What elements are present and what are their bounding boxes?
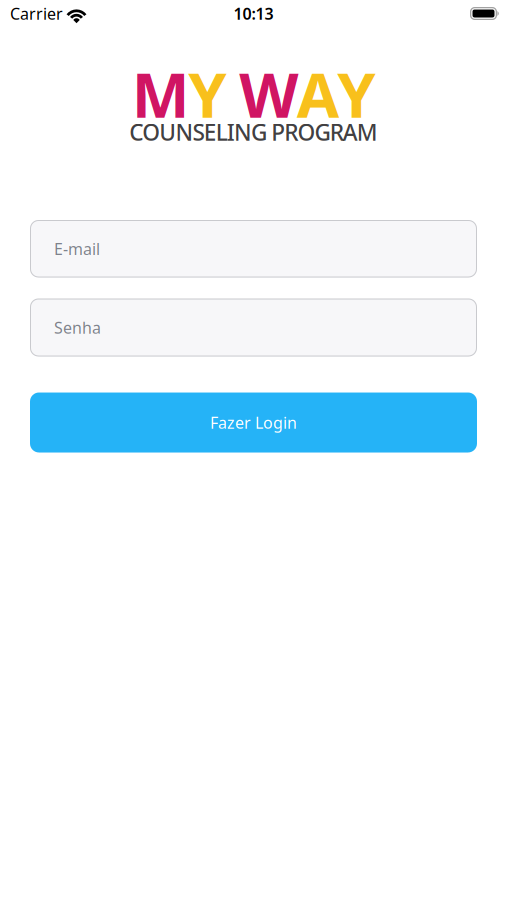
- staticText: Fazer Login: [210, 412, 297, 433]
- staticText: Senha: [54, 317, 101, 338]
- staticText: E-mail: [54, 238, 100, 259]
- button[interactable]: E-mail: [30, 220, 477, 277]
- staticText: [225, 53, 241, 135]
- staticText: M: [132, 53, 190, 135]
- button[interactable]: Fazer Login: [30, 392, 477, 452]
- staticText: COUNSELING PROGRAM: [129, 117, 378, 147]
- staticText: A: [297, 53, 339, 135]
- staticText: Carrier: [10, 3, 63, 24]
- staticText: W: [239, 53, 298, 135]
- button[interactable]: Senha: [30, 298, 477, 356]
- staticText: 10:13: [233, 3, 273, 24]
- staticText: Y: [337, 53, 375, 135]
- staticText: Y: [188, 53, 226, 135]
